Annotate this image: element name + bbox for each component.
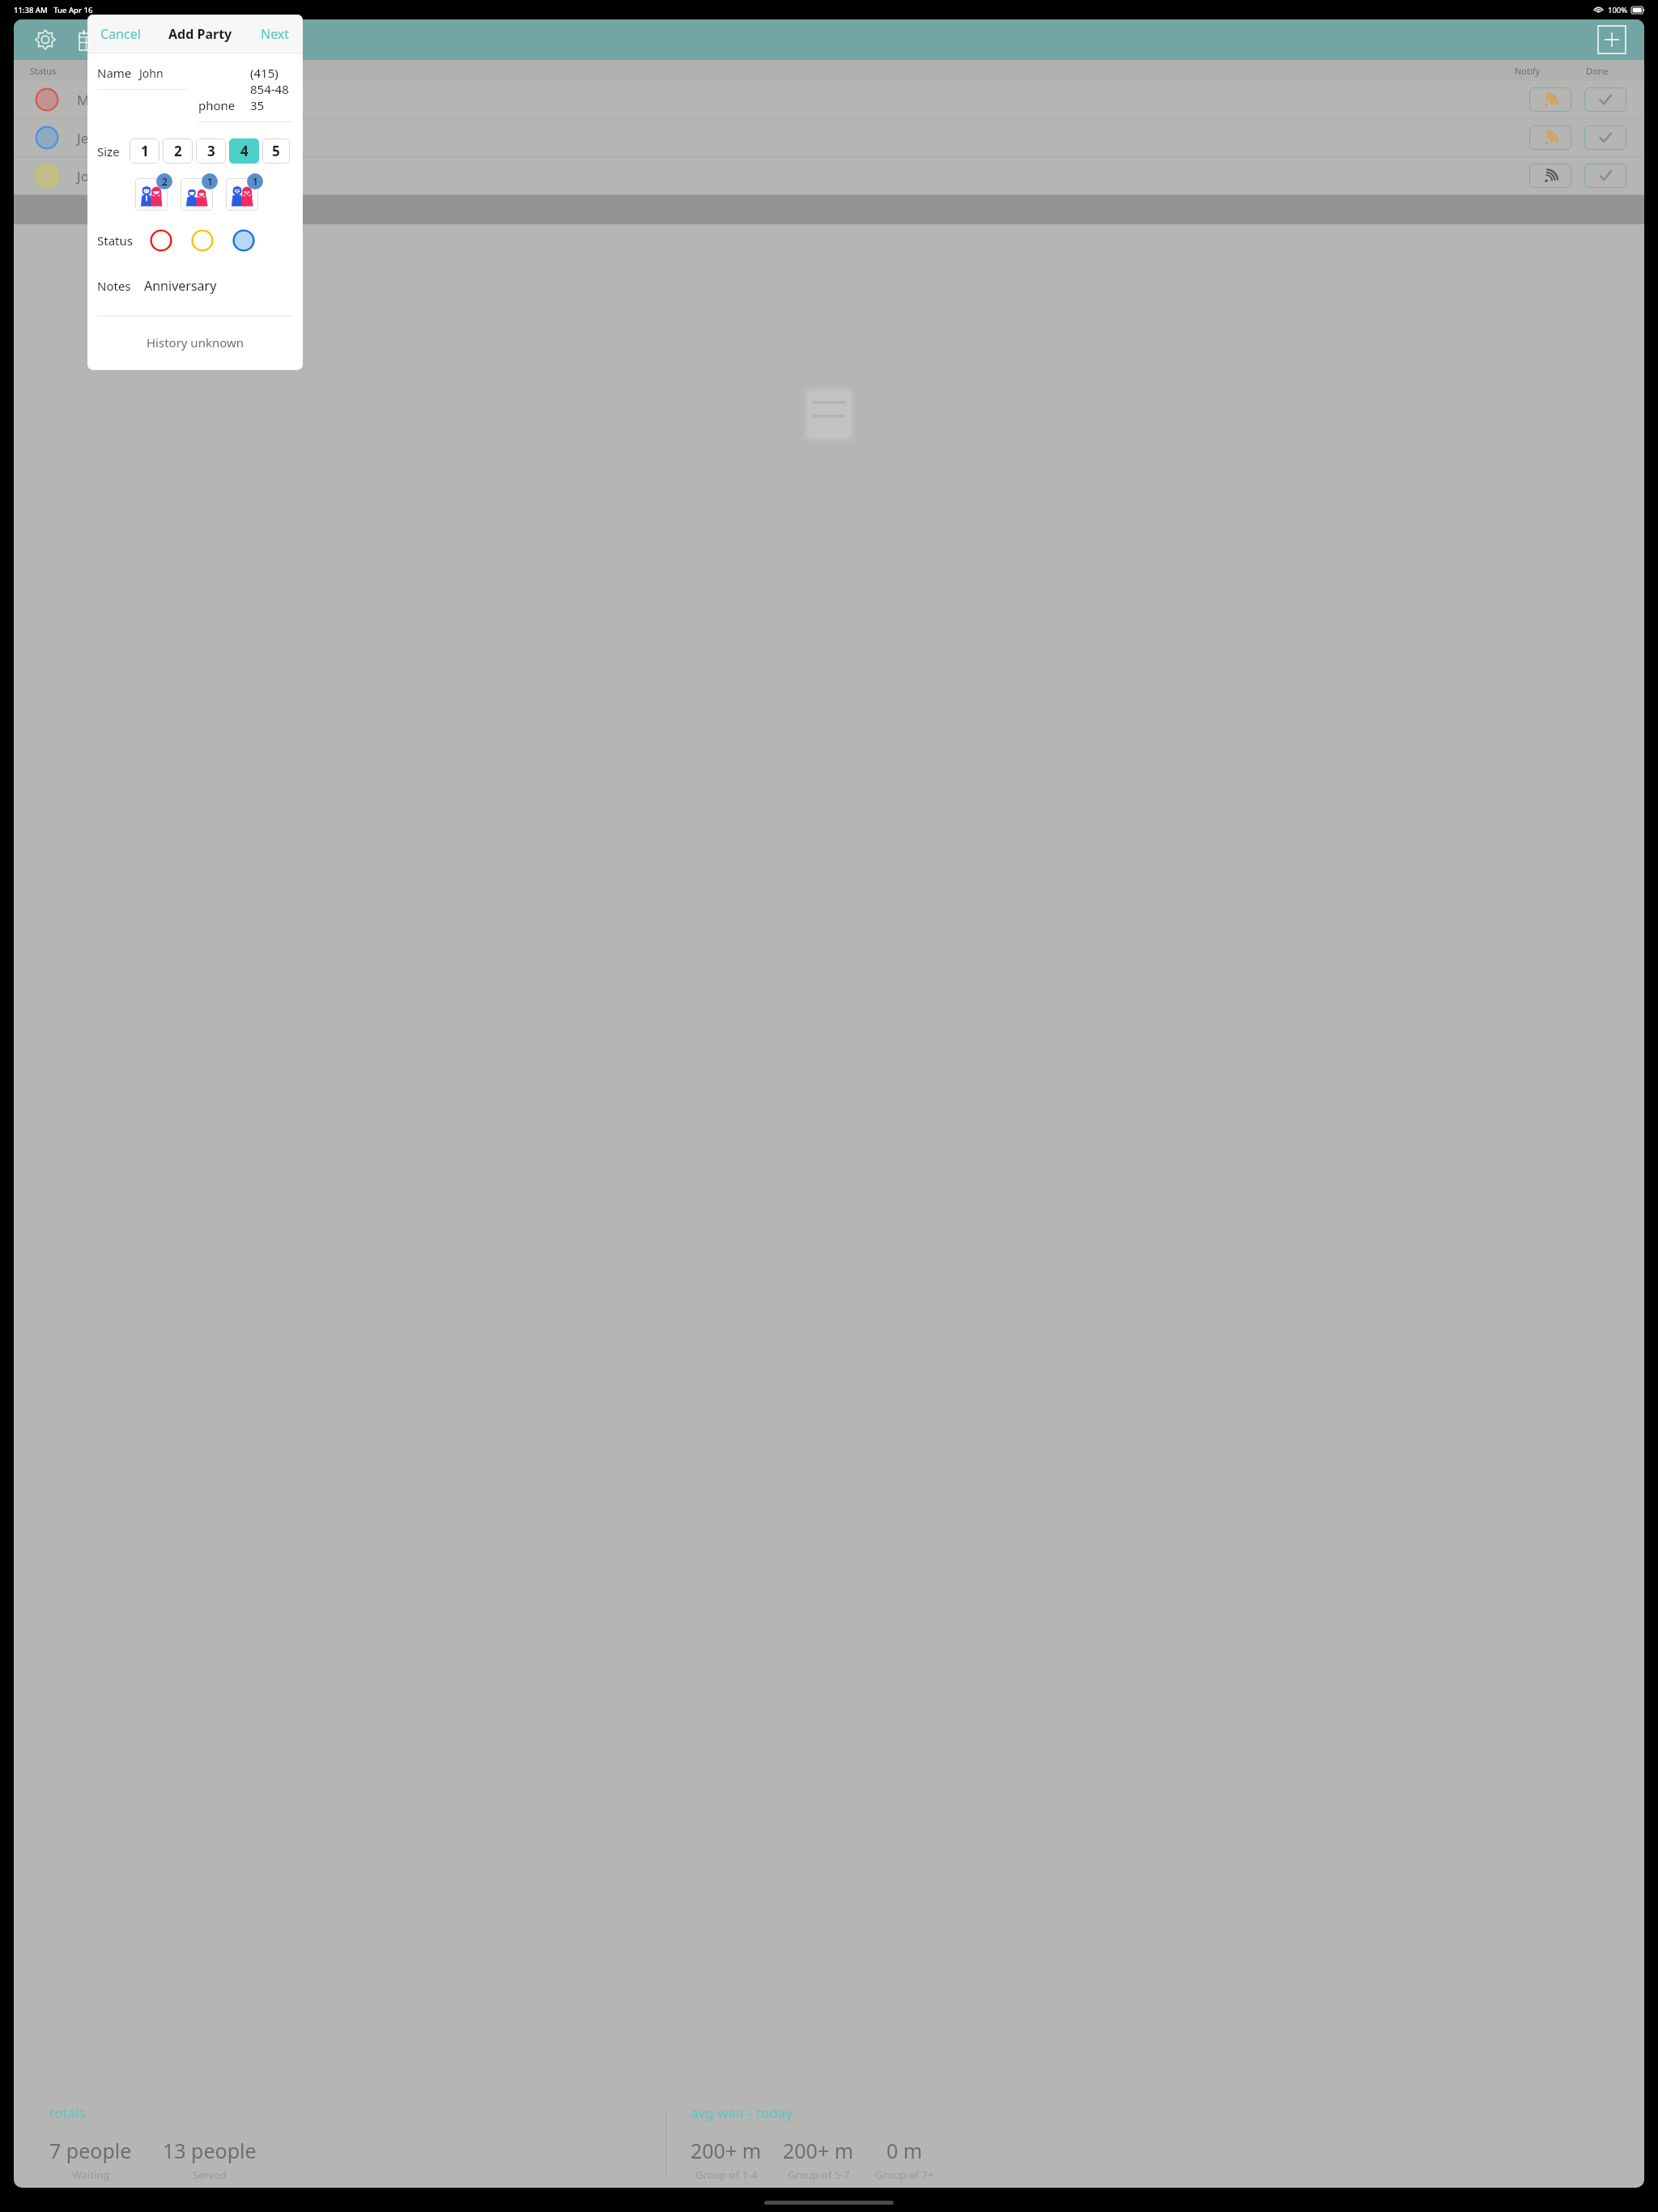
staticText: 1: [207, 175, 213, 188]
staticText: Melan: [77, 91, 117, 109]
staticText: Cancel: [100, 25, 141, 43]
staticText: Jon: [77, 167, 98, 185]
button[interactable]: Done Jon: [1584, 164, 1626, 188]
button[interactable]: Jeff: [14, 119, 1644, 156]
staticText: avg wait - today: [691, 2104, 793, 2122]
staticText: Done: [1586, 65, 1609, 77]
button[interactable]: 1: [130, 138, 159, 164]
button[interactable]: Next: [257, 22, 293, 46]
staticText: Name: [97, 65, 132, 81]
staticText: Status: [30, 65, 57, 77]
button[interactable]: Done Melan: [1584, 87, 1626, 112]
staticText: 4: [240, 142, 249, 160]
button[interactable]: 5: [262, 138, 290, 164]
staticText: Status: [97, 232, 133, 249]
staticText: Group of 7+: [875, 2167, 934, 2182]
button[interactable]: Done Jeff: [1584, 125, 1626, 150]
staticText: totals: [49, 2104, 86, 2122]
staticText: Notify: [1515, 65, 1541, 77]
staticText: 100%: [1608, 5, 1628, 15]
staticText: John: [139, 66, 164, 81]
button[interactable]: Guest type: [181, 178, 213, 211]
staticText: Group of 1-4: [695, 2167, 758, 2182]
staticText: 0 m: [886, 2137, 923, 2164]
staticText: Notes: [97, 278, 131, 294]
button[interactable]: Melan: [14, 81, 1644, 118]
button[interactable]: Status color: [230, 227, 257, 254]
staticText: 200+ m: [783, 2137, 854, 2164]
button[interactable]: History: [119, 26, 147, 53]
button[interactable]: Jon: [14, 157, 1644, 194]
button[interactable]: Anniversary: [144, 277, 293, 295]
staticText: Add Party: [168, 25, 232, 43]
staticText: phone: [198, 97, 236, 113]
button[interactable]: Guest type: [226, 178, 258, 211]
staticText: Name: [94, 65, 120, 77]
button[interactable]: 4: [229, 138, 259, 164]
staticText: (415) 854-4835: [250, 65, 293, 113]
staticText: Anniversary: [144, 277, 217, 295]
staticText: 11:38 AM Tue Apr 16: [14, 5, 93, 15]
staticText: 5: [272, 142, 280, 160]
button[interactable]: Guest type: [135, 178, 168, 211]
button[interactable]: 2: [163, 138, 193, 164]
staticText: 7 people: [49, 2137, 132, 2164]
staticText: Waiting: [72, 2167, 110, 2182]
button[interactable]: John: [139, 66, 187, 81]
button[interactable]: Status color: [189, 227, 216, 254]
staticText: 2: [162, 175, 168, 188]
button[interactable]: Calendar: [75, 26, 103, 53]
staticText: History unknown: [87, 334, 303, 351]
staticText: Group of 5-7: [788, 2167, 850, 2182]
staticText: 13 people: [163, 2137, 257, 2164]
button[interactable]: Status color: [147, 227, 175, 254]
staticText: Next: [261, 25, 290, 43]
staticText: 1: [253, 175, 258, 188]
button[interactable]: Notify Melan: [1529, 87, 1571, 112]
button[interactable]: Add party: [1597, 25, 1626, 54]
button[interactable]: Settings: [32, 26, 59, 53]
staticText: Size: [97, 143, 120, 160]
button[interactable]: Notify Jon: [1529, 164, 1571, 188]
button[interactable]: 3: [196, 138, 226, 164]
staticText: 3: [207, 142, 215, 160]
staticText: Jeff: [77, 129, 98, 147]
staticText: 200+ m: [691, 2137, 762, 2164]
staticText: Served: [193, 2167, 227, 2182]
staticText: 1: [141, 142, 149, 160]
staticText: 2: [174, 142, 182, 160]
button[interactable]: (415) 854-4835: [250, 65, 293, 113]
button[interactable]: Cancel: [97, 22, 144, 46]
button[interactable]: Notify Jeff: [1529, 125, 1571, 150]
